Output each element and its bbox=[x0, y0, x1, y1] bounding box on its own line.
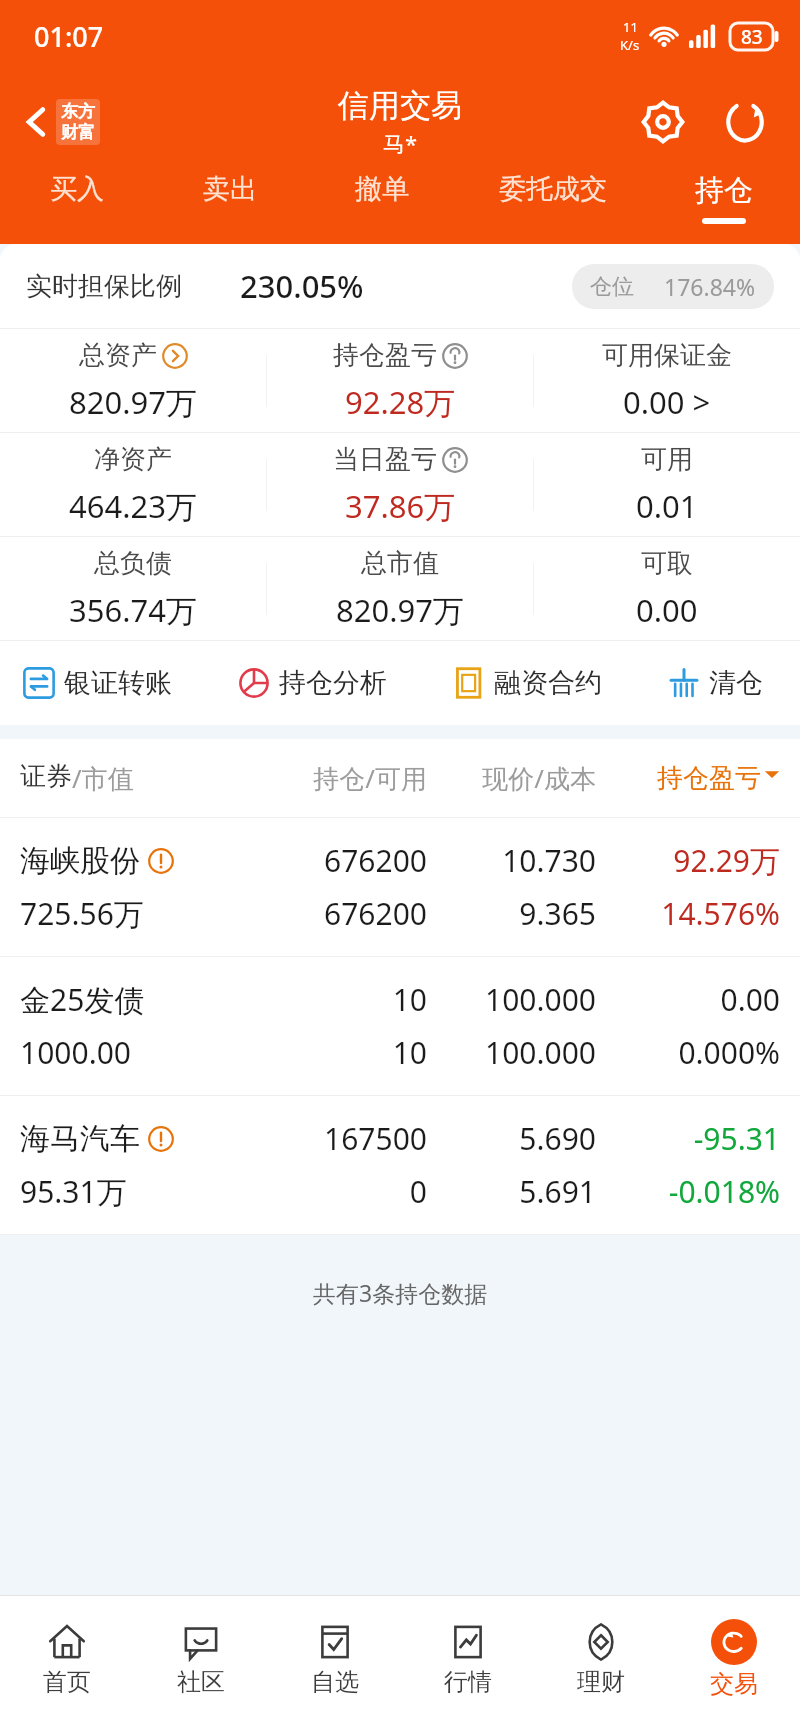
button[interactable]: 实时担保比例 bbox=[0, 244, 800, 328]
button[interactable]: 社区 bbox=[134, 1596, 268, 1722]
staticText: 卖出 bbox=[203, 172, 257, 206]
staticText: 可用 bbox=[641, 443, 693, 476]
button[interactable]: 总资产 bbox=[0, 329, 266, 432]
staticText: 92.28万 bbox=[345, 381, 456, 423]
button[interactable]: 海马汽车 bbox=[0, 1096, 800, 1234]
button[interactable]: 融资合约 bbox=[452, 641, 667, 725]
staticText: 海峡股份 bbox=[20, 842, 140, 880]
staticText: 356.74万 bbox=[69, 589, 197, 631]
staticText: 持仓盈亏 bbox=[657, 762, 761, 795]
staticText: 83 bbox=[741, 24, 763, 50]
staticText: 176.84% bbox=[664, 271, 756, 302]
button[interactable]: 持仓 bbox=[648, 172, 800, 244]
button[interactable]: 当日盈亏 bbox=[267, 433, 533, 536]
staticText: 100.000 bbox=[427, 979, 596, 1020]
staticText: 仓位 bbox=[590, 273, 634, 301]
button[interactable]: 总负债 bbox=[0, 537, 266, 640]
staticText: 持仓 bbox=[695, 172, 753, 209]
button[interactable]: 首页 bbox=[0, 1596, 134, 1722]
staticText: 实时担保比例 bbox=[26, 270, 182, 303]
staticText: 10 bbox=[243, 979, 427, 1020]
staticText: 交易 bbox=[710, 1669, 758, 1699]
staticText: 5.690 bbox=[427, 1118, 596, 1159]
staticText: 0.00 > bbox=[623, 381, 711, 423]
staticText: /市值 bbox=[72, 760, 134, 796]
staticText: 5.691 bbox=[427, 1171, 596, 1212]
staticText: 总资产 bbox=[79, 339, 157, 372]
staticText: 9.365 bbox=[427, 893, 596, 934]
staticText: 买入 bbox=[50, 172, 104, 206]
staticText: 清仓 bbox=[709, 666, 763, 700]
staticText: 当日盈亏 bbox=[333, 443, 437, 476]
staticText: 总负债 bbox=[94, 547, 172, 580]
staticText: 东方 bbox=[61, 101, 95, 122]
staticText: 0 bbox=[243, 1171, 427, 1212]
staticText: 共有3条持仓数据 bbox=[313, 1277, 488, 1308]
staticText: 总市值 bbox=[361, 547, 439, 580]
button[interactable]: 理财 bbox=[534, 1596, 667, 1722]
button[interactable]: 自选 bbox=[268, 1596, 401, 1722]
staticText: 11 bbox=[623, 18, 638, 36]
staticText: 净资产 bbox=[94, 443, 172, 476]
button[interactable]: 委托成交 bbox=[458, 172, 648, 244]
staticText: -0.018% bbox=[596, 1171, 780, 1212]
staticText: 社区 bbox=[177, 1667, 225, 1697]
staticText: 820.97万 bbox=[69, 381, 197, 423]
staticText: 证券 bbox=[20, 760, 72, 793]
staticText: 725.56万 bbox=[20, 893, 243, 934]
staticText: 0.01 bbox=[636, 485, 698, 527]
staticText: 持仓盈亏 bbox=[333, 339, 437, 372]
button[interactable]: Refresh bbox=[716, 93, 774, 151]
staticText: 金25发债 bbox=[20, 979, 145, 1020]
button[interactable]: 清仓 bbox=[667, 641, 800, 725]
staticText: 10 bbox=[243, 1032, 427, 1073]
staticText: 银证转账 bbox=[64, 666, 172, 700]
staticText: 行情 bbox=[444, 1667, 492, 1697]
staticText: 自选 bbox=[311, 1667, 359, 1697]
staticText: 0.00 bbox=[596, 979, 780, 1020]
staticText: 现价/成本 bbox=[427, 760, 596, 796]
button[interactable]: 持仓分析 bbox=[237, 641, 452, 725]
staticText: 0.000% bbox=[596, 1032, 780, 1073]
staticText: 海马汽车 bbox=[20, 1120, 140, 1158]
staticText: 1000.00 bbox=[20, 1032, 243, 1073]
button[interactable]: 买入 bbox=[0, 172, 153, 244]
staticText: 92.29万 bbox=[596, 840, 780, 881]
staticText: 撤单 bbox=[355, 172, 409, 206]
staticText: 100.000 bbox=[427, 1032, 596, 1073]
button[interactable]: 持仓盈亏 bbox=[267, 329, 533, 432]
staticText: 167500 bbox=[243, 1118, 427, 1159]
staticText: 676200 bbox=[243, 893, 427, 934]
button[interactable]: 总市值 bbox=[267, 537, 533, 640]
button[interactable]: 交易 bbox=[667, 1596, 800, 1722]
staticText: 首页 bbox=[43, 1667, 91, 1697]
button[interactable]: 可取 bbox=[534, 537, 800, 640]
staticText: 马* bbox=[383, 128, 418, 158]
button[interactable]: 金25发债 bbox=[0, 957, 800, 1095]
button[interactable]: 银证转账 bbox=[22, 641, 237, 725]
staticText: 01:07 bbox=[34, 18, 104, 55]
staticText: 持仓/可用 bbox=[243, 760, 427, 796]
staticText: 95.31万 bbox=[20, 1171, 243, 1212]
staticText: 委托成交 bbox=[499, 172, 607, 206]
button[interactable]: 可用 bbox=[534, 433, 800, 536]
button[interactable]: 海峡股份 bbox=[0, 818, 800, 956]
button[interactable]: 卖出 bbox=[153, 172, 306, 244]
staticText: 230.05% bbox=[240, 265, 364, 307]
staticText: 10.730 bbox=[427, 840, 596, 881]
staticText: 14.576% bbox=[596, 893, 780, 934]
staticText: -95.31 bbox=[596, 1118, 780, 1159]
button[interactable]: 可用保证金 bbox=[534, 329, 800, 432]
staticText: 37.86万 bbox=[345, 485, 456, 527]
button[interactable]: 东方 bbox=[18, 93, 106, 151]
button[interactable]: 行情 bbox=[401, 1596, 534, 1722]
staticText: 信用交易 bbox=[338, 86, 462, 125]
staticText: 持仓分析 bbox=[279, 666, 387, 700]
button[interactable]: 净资产 bbox=[0, 433, 266, 536]
staticText: 财富 bbox=[61, 122, 95, 143]
staticText: 820.97万 bbox=[336, 589, 464, 631]
staticText: K/s bbox=[620, 36, 640, 54]
button[interactable]: 撤单 bbox=[306, 172, 458, 244]
button[interactable]: Settings bbox=[634, 93, 692, 151]
staticText: 676200 bbox=[243, 840, 427, 881]
